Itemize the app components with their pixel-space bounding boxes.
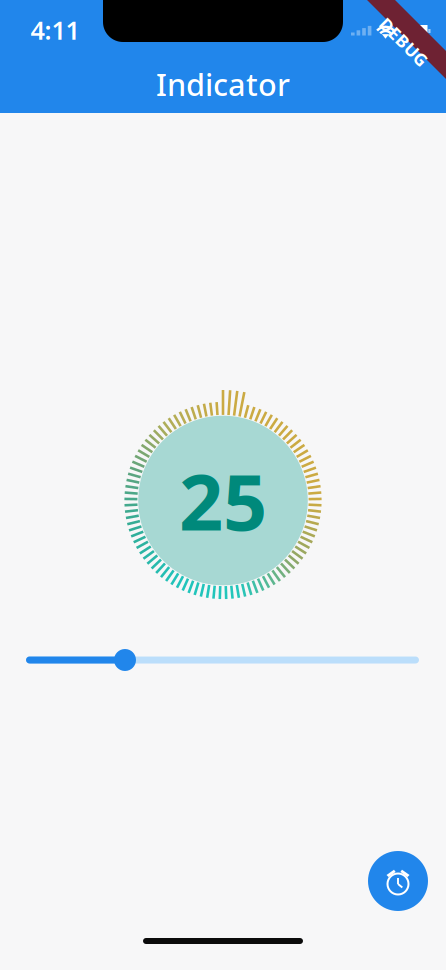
staticText: Indicator <box>156 64 290 104</box>
button[interactable]: Set alarm <box>368 851 428 911</box>
staticText: 4:11 <box>30 13 79 47</box>
staticText: DEBUG <box>373 30 434 53</box>
staticText: 25 <box>179 449 267 552</box>
